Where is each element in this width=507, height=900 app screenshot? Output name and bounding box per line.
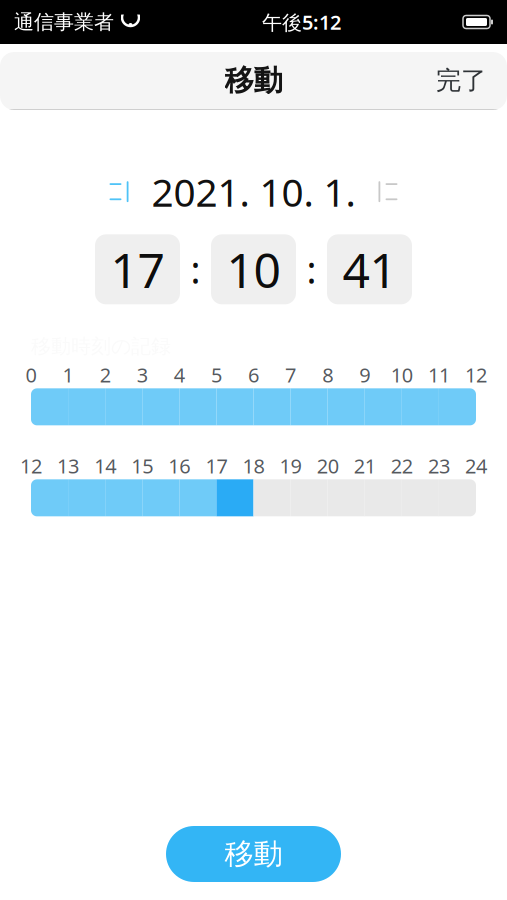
button[interactable]: 10 bbox=[211, 234, 296, 304]
staticText: 5 bbox=[211, 362, 222, 388]
staticText: 22 bbox=[391, 453, 413, 479]
staticText: 15 bbox=[131, 453, 153, 479]
staticText: 10 bbox=[391, 362, 413, 388]
staticText: 午後5:12 bbox=[262, 9, 341, 35]
staticText: 完了 bbox=[436, 65, 486, 96]
button[interactable]: 移動 bbox=[166, 826, 341, 882]
staticText: 41 bbox=[342, 237, 396, 301]
staticText: 19 bbox=[280, 453, 302, 479]
staticText: 12 bbox=[465, 362, 487, 388]
staticText: 17 bbox=[205, 453, 227, 479]
staticText: 8 bbox=[322, 362, 333, 388]
button[interactable]: 完了 bbox=[422, 55, 500, 106]
staticText: 24 bbox=[465, 453, 487, 479]
staticText: : bbox=[190, 245, 200, 294]
staticText: 0 bbox=[25, 362, 36, 388]
staticText: 移動 bbox=[224, 836, 282, 872]
staticText: 7 bbox=[285, 362, 296, 388]
staticText: 17 bbox=[110, 237, 164, 301]
staticText: 23 bbox=[428, 453, 450, 479]
button[interactable]: 前の日 bbox=[99, 170, 138, 213]
staticText: 1 bbox=[63, 362, 74, 388]
staticText: 移動 bbox=[224, 62, 282, 98]
staticText: 9 bbox=[359, 362, 370, 388]
staticText: 10 bbox=[226, 237, 280, 301]
staticText: 2 bbox=[100, 362, 111, 388]
staticText: 4 bbox=[174, 362, 185, 388]
staticText: 18 bbox=[242, 453, 264, 479]
button[interactable]: 17 bbox=[95, 234, 180, 304]
staticText: 2021. 10. 1. bbox=[151, 166, 355, 217]
staticText: 14 bbox=[94, 453, 116, 479]
staticText: 3 bbox=[137, 362, 148, 388]
button[interactable]: 次の日 bbox=[368, 170, 407, 213]
staticText: 11 bbox=[428, 362, 450, 388]
staticText: 16 bbox=[168, 453, 190, 479]
staticText: 20 bbox=[317, 453, 339, 479]
staticText: 21 bbox=[354, 453, 376, 479]
button[interactable]: 41 bbox=[327, 234, 412, 304]
staticText: 13 bbox=[57, 453, 79, 479]
staticText: : bbox=[306, 245, 316, 294]
staticText: 12 bbox=[20, 453, 42, 479]
staticText: 通信事業者 bbox=[14, 10, 114, 34]
staticText: 6 bbox=[248, 362, 259, 388]
